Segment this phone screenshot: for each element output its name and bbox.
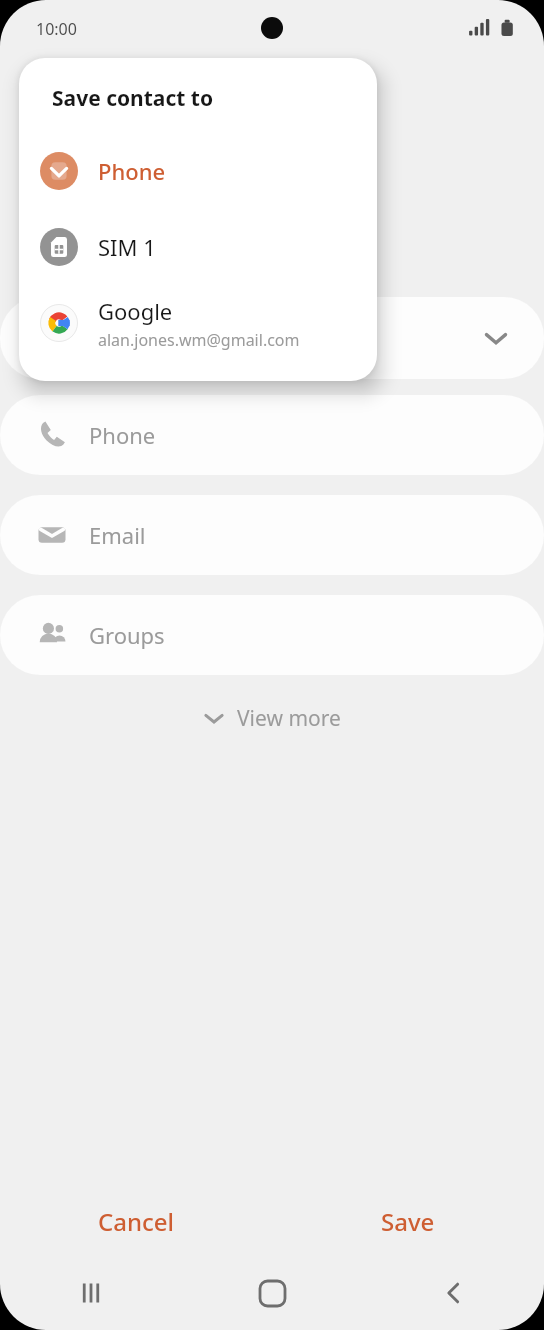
staticText: Google [98,296,173,326]
staticText: Save contact to [52,84,214,113]
button[interactable]: Home [182,1256,363,1330]
button[interactable]: Save [272,1188,544,1254]
staticText: Groups [89,620,165,650]
staticText: View more [237,704,341,733]
button[interactable] [0,297,544,379]
button[interactable]: Phone [0,395,544,475]
staticText: Phone [98,156,166,186]
staticText: Phone [89,420,156,450]
button[interactable]: Back [363,1256,544,1330]
button[interactable]: Cancel [0,1188,272,1254]
button[interactable]: Google [19,285,377,361]
button[interactable]: Groups [0,595,544,675]
button[interactable]: SIM 1 [19,209,377,285]
button[interactable]: Recent apps [0,1256,182,1330]
button[interactable]: Email [0,495,544,575]
staticText: Email [89,520,146,550]
staticText: Save [381,1205,435,1238]
staticText: 10:00 [36,18,77,40]
button[interactable]: View more [0,689,544,747]
staticText: SIM 1 [98,232,156,262]
staticText: Cancel [98,1205,175,1238]
button[interactable]: Phone [19,133,377,209]
staticText: alan.jones.wm@gmail.com [98,329,300,351]
